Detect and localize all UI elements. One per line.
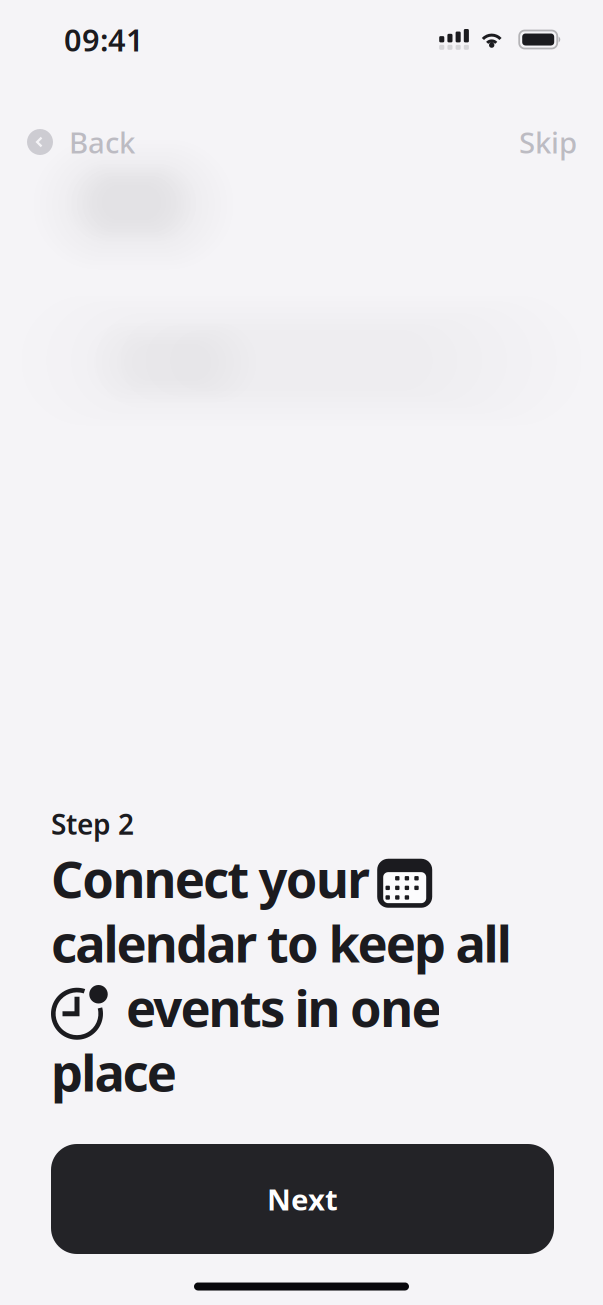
staticText: events in one	[126, 974, 441, 1041]
button[interactable]: Skip	[519, 120, 577, 164]
staticText: Next	[267, 1179, 338, 1218]
staticText: Connect your	[51, 845, 370, 912]
staticText: Skip	[519, 122, 577, 161]
button[interactable]: Next	[51, 1144, 554, 1254]
button[interactable]: Back	[27, 120, 135, 164]
staticText: calendar to keep all	[51, 909, 512, 976]
staticText: Back	[69, 122, 135, 161]
staticText: Step 2	[51, 805, 134, 843]
staticText: 09:41	[64, 19, 144, 60]
staticText: place	[51, 1038, 177, 1105]
